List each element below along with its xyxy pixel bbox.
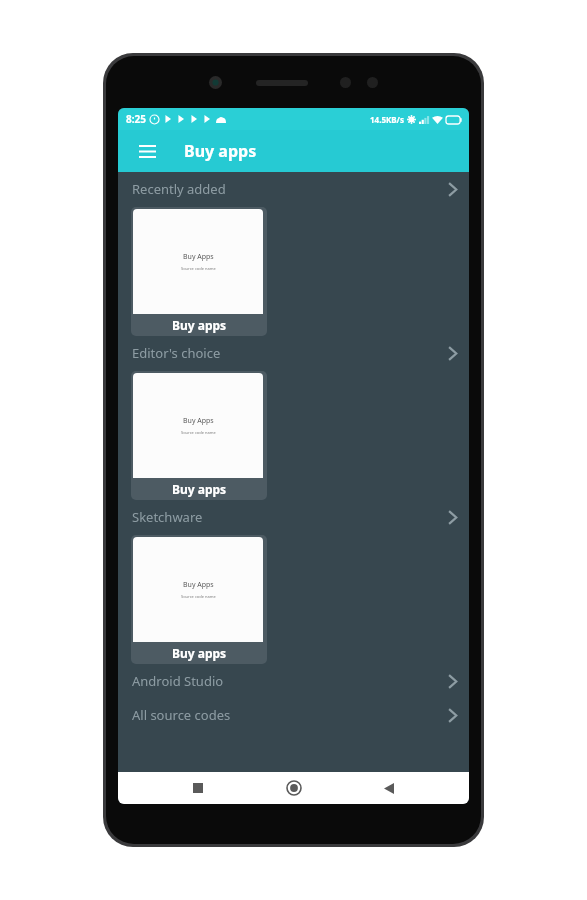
- button[interactable]: Buy Apps: [131, 535, 267, 664]
- button[interactable]: Android Studio: [118, 664, 469, 698]
- button[interactable]: Back: [373, 772, 405, 804]
- button[interactable]: Buy Apps: [131, 371, 267, 500]
- staticText: Buy Apps: [183, 580, 214, 590]
- staticText: Android Studio: [132, 672, 224, 690]
- staticText: Source code name: [181, 430, 216, 435]
- staticText: Buy apps: [172, 317, 227, 333]
- button[interactable]: Home: [278, 772, 310, 804]
- staticText: Buy apps: [184, 140, 257, 162]
- staticText: Buy apps: [172, 645, 227, 661]
- staticText: All source codes: [132, 706, 231, 724]
- button[interactable]: Recently added: [118, 172, 469, 206]
- button[interactable]: Open navigation menu: [132, 136, 162, 166]
- staticText: 8:25: [126, 112, 146, 126]
- staticText: Buy Apps: [183, 252, 214, 262]
- staticText: Buy Apps: [183, 416, 214, 426]
- staticText: Editor's choice: [132, 344, 221, 362]
- staticText: Sketchware: [132, 508, 203, 526]
- button[interactable]: Buy Apps: [131, 207, 267, 336]
- staticText: Recently added: [132, 180, 226, 198]
- staticText: Source code name: [181, 594, 216, 599]
- button[interactable]: Sketchware: [118, 500, 469, 534]
- staticText: 14.5KB/s: [370, 114, 404, 125]
- staticText: Buy apps: [172, 481, 227, 497]
- button[interactable]: Recent apps: [182, 772, 214, 804]
- staticText: Source code name: [181, 266, 216, 271]
- button[interactable]: All source codes: [118, 698, 469, 732]
- button[interactable]: Editor's choice: [118, 336, 469, 370]
